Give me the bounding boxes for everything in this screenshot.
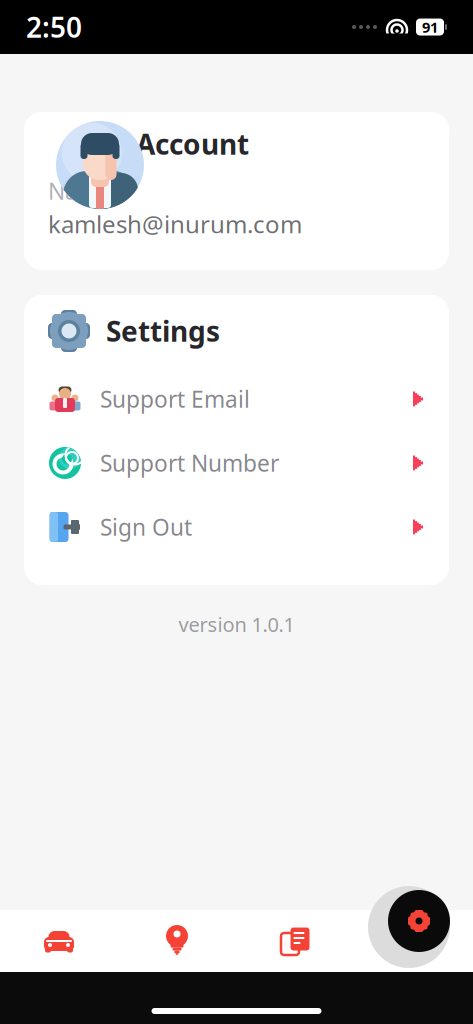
staticText: kamlesh@inurum.com xyxy=(48,208,302,240)
button[interactable]: Map xyxy=(118,910,236,972)
button[interactable]: Vehicles xyxy=(0,910,118,972)
staticText: 2:50 xyxy=(26,8,82,46)
staticText: Account xyxy=(136,125,249,163)
staticText: 91 xyxy=(422,17,438,37)
button[interactable]: Settings xyxy=(388,890,450,952)
button[interactable]: Support Number xyxy=(24,431,449,495)
button[interactable]: Reports xyxy=(236,910,354,972)
staticText: Settings xyxy=(106,312,220,350)
button[interactable]: Support Email xyxy=(24,367,449,431)
staticText: Support Number xyxy=(100,448,279,478)
staticText: Name: xyxy=(48,176,118,206)
staticText: Support Email xyxy=(100,384,250,414)
button[interactable]: Sign Out xyxy=(24,495,449,559)
staticText: version 1.0.1 xyxy=(178,611,294,638)
staticText: Sign Out xyxy=(100,512,192,542)
